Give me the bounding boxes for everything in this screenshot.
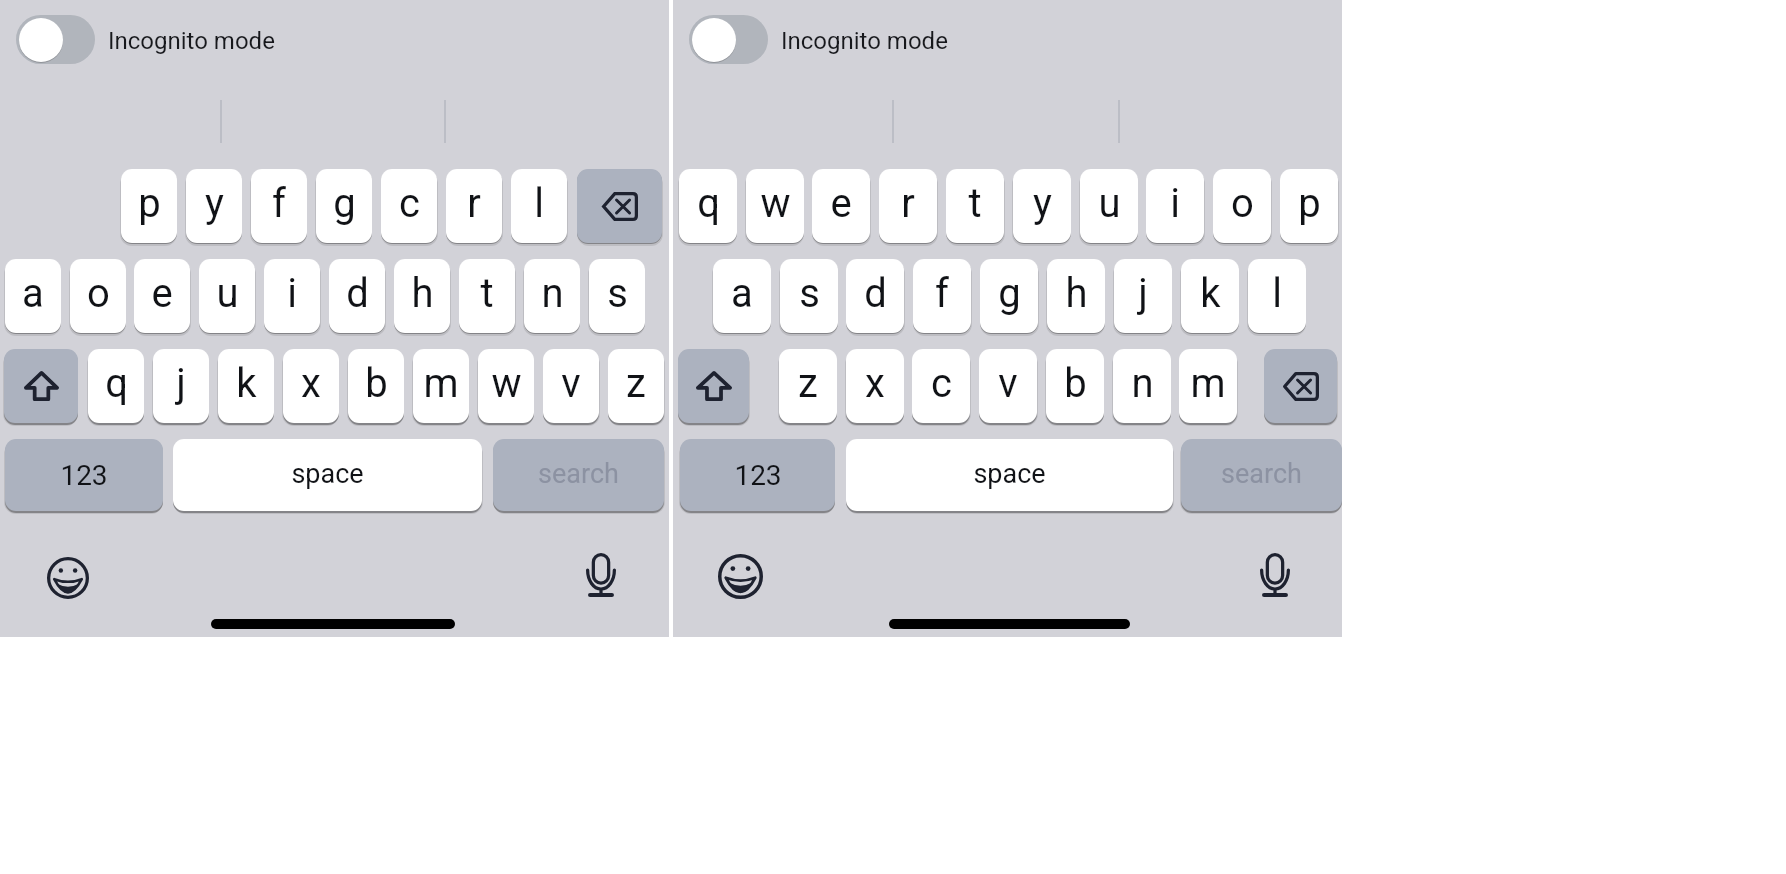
button[interactable]: t — [459, 259, 515, 333]
button[interactable]: k — [1181, 259, 1239, 333]
button[interactable]: b — [1046, 349, 1104, 423]
button[interactable]: y — [186, 169, 242, 243]
button[interactable]: w — [478, 349, 534, 423]
staticText: y — [205, 180, 224, 227]
button[interactable]: m — [413, 349, 469, 423]
button[interactable]: b — [348, 349, 404, 423]
button[interactable]: space — [173, 439, 482, 511]
button[interactable]: z — [779, 349, 837, 423]
button[interactable]: w — [746, 169, 804, 243]
button[interactable]: u — [199, 259, 255, 333]
button[interactable]: n — [1113, 349, 1171, 423]
button[interactable]: u — [1080, 169, 1138, 243]
staticText: j — [1138, 270, 1148, 317]
staticText: f — [935, 270, 949, 317]
button[interactable]: d — [329, 259, 385, 333]
button[interactable]: p — [1280, 169, 1338, 243]
staticText: q — [105, 360, 128, 407]
staticText: r — [901, 180, 915, 227]
button[interactable]: p — [121, 169, 177, 243]
staticText: p — [1298, 180, 1321, 227]
button[interactable]: 123 — [5, 439, 163, 511]
button[interactable]: q — [679, 169, 737, 243]
button[interactable]: h — [1047, 259, 1105, 333]
staticText: a — [22, 270, 44, 317]
button[interactable]: r — [446, 169, 502, 243]
staticText: c — [399, 180, 420, 227]
button[interactable]: j — [153, 349, 209, 423]
staticText: i — [1170, 180, 1180, 227]
button[interactable]: Voice input — [1245, 545, 1305, 606]
staticText: t — [968, 180, 982, 227]
button[interactable]: a — [5, 259, 61, 333]
staticText: g — [333, 180, 356, 227]
button[interactable]: x — [283, 349, 339, 423]
button[interactable]: n — [524, 259, 580, 333]
button[interactable]: r — [879, 169, 937, 243]
button[interactable]: Shift — [678, 349, 749, 423]
button[interactable]: s — [780, 259, 838, 333]
button[interactable]: search — [1181, 439, 1342, 511]
button[interactable]: g — [316, 169, 372, 243]
staticText: i — [287, 270, 297, 317]
button[interactable]: Backspace — [1264, 349, 1337, 423]
button[interactable]: h — [394, 259, 450, 333]
button[interactable]: o — [1213, 169, 1271, 243]
button[interactable]: 123 — [680, 439, 835, 511]
button[interactable]: e — [812, 169, 870, 243]
staticText: t — [480, 270, 494, 317]
button[interactable]: l — [511, 169, 567, 243]
button[interactable]: l — [1248, 259, 1306, 333]
button[interactable]: Incognito mode toggle — [689, 15, 768, 64]
button[interactable]: v — [979, 349, 1037, 423]
button[interactable]: i — [264, 259, 320, 333]
button[interactable]: j — [1114, 259, 1172, 333]
button[interactable]: f — [913, 259, 971, 333]
button[interactable]: Emoji — [709, 545, 771, 607]
staticText: r — [467, 180, 481, 227]
staticText: l — [534, 180, 544, 227]
button[interactable]: Emoji — [37, 547, 98, 608]
button[interactable]: Backspace — [577, 169, 662, 243]
staticText: f — [272, 180, 286, 227]
staticText: x — [865, 360, 885, 407]
button[interactable]: x — [846, 349, 904, 423]
staticText: z — [626, 360, 646, 407]
button[interactable]: v — [543, 349, 599, 423]
button[interactable]: c — [381, 169, 437, 243]
button[interactable]: c — [912, 349, 970, 423]
button[interactable]: space — [846, 439, 1173, 511]
staticText: l — [1272, 270, 1282, 317]
staticText: 123 — [60, 459, 108, 492]
button[interactable]: Shift — [4, 349, 78, 423]
button[interactable]: t — [946, 169, 1004, 243]
button[interactable]: m — [1179, 349, 1237, 423]
button[interactable]: search — [493, 439, 664, 511]
button[interactable]: f — [251, 169, 307, 243]
staticText: c — [931, 360, 952, 407]
staticText: e — [830, 180, 852, 227]
staticText: Incognito mode — [781, 27, 948, 55]
staticText: search — [538, 458, 619, 490]
button[interactable]: d — [846, 259, 904, 333]
button[interactable]: y — [1013, 169, 1071, 243]
button[interactable]: o — [70, 259, 126, 333]
staticText: v — [561, 360, 581, 407]
staticText: s — [607, 270, 628, 317]
button[interactable]: g — [980, 259, 1038, 333]
staticText: space — [291, 458, 364, 490]
button[interactable]: Incognito mode toggle — [16, 15, 95, 64]
button[interactable]: i — [1146, 169, 1204, 243]
staticText: n — [1131, 360, 1154, 407]
staticText: d — [864, 270, 887, 317]
button[interactable]: k — [218, 349, 274, 423]
button[interactable]: z — [608, 349, 664, 423]
button[interactable]: Voice input — [571, 545, 631, 606]
button[interactable]: a — [713, 259, 771, 333]
button[interactable]: q — [88, 349, 144, 423]
button[interactable]: e — [134, 259, 190, 333]
staticText: y — [1033, 180, 1052, 227]
button[interactable]: s — [589, 259, 645, 333]
staticText: 123 — [734, 459, 782, 492]
staticText: x — [301, 360, 321, 407]
